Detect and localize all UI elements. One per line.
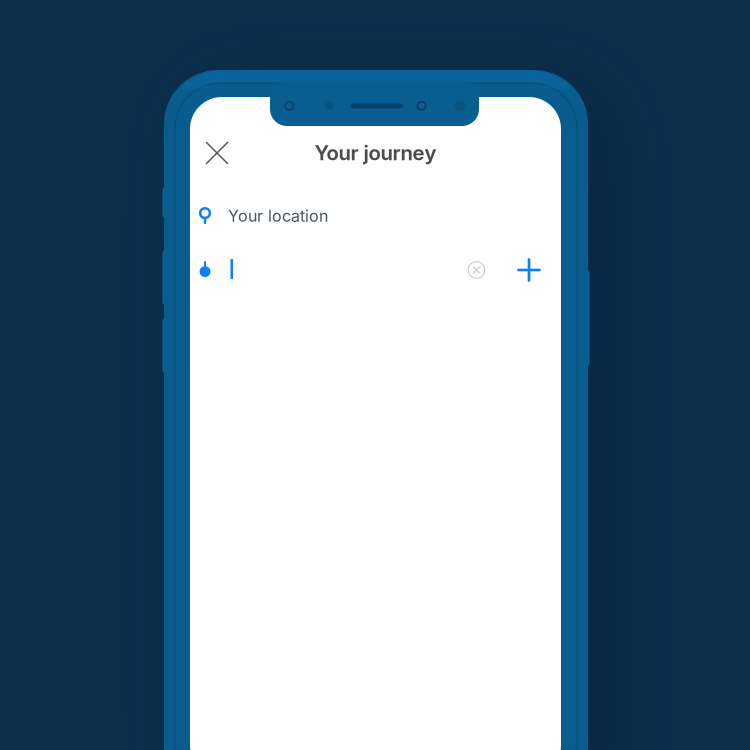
button[interactable]: Your location bbox=[190, 194, 561, 238]
staticText: Your journey bbox=[314, 141, 436, 165]
button[interactable]: Clear destination bbox=[458, 252, 494, 288]
button[interactable]: Add stop bbox=[510, 251, 548, 289]
staticText: Your location bbox=[228, 206, 328, 226]
button[interactable]: Close bbox=[194, 130, 240, 176]
